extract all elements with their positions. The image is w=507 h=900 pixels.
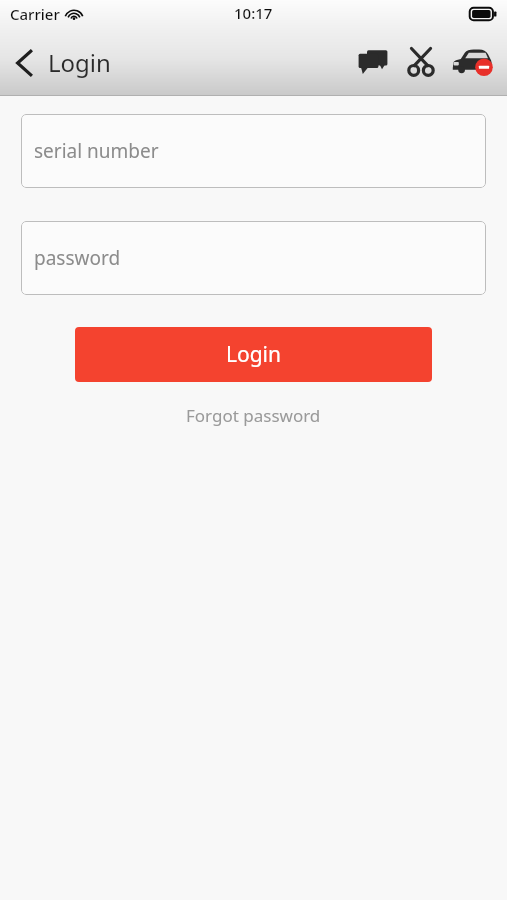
button[interactable]: serial number <box>21 114 486 188</box>
staticText: Forgot password <box>186 404 321 427</box>
button[interactable]: Messages <box>349 38 397 86</box>
staticText: Carrier <box>10 4 60 24</box>
staticText: 10:17 <box>234 3 273 23</box>
button[interactable]: Cut <box>397 38 445 86</box>
staticText: password <box>34 245 121 271</box>
staticText: serial number <box>34 138 159 164</box>
button[interactable]: password <box>21 221 486 295</box>
button[interactable]: Back <box>0 38 121 87</box>
button[interactable]: Login <box>75 327 432 382</box>
staticText: Login <box>226 340 282 369</box>
button[interactable]: Car blocked <box>445 35 499 89</box>
staticText: Login <box>48 46 111 79</box>
button[interactable]: Forgot password <box>0 404 507 427</box>
